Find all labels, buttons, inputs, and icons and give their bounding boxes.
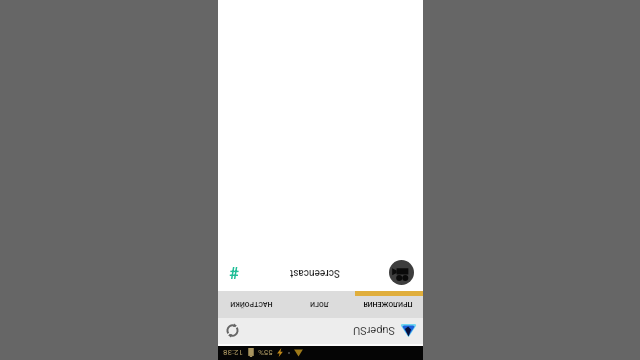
- staticText: #: [229, 263, 239, 282]
- button[interactable]: Refresh: [220, 318, 246, 344]
- button[interactable]: НАСТРОЙКИ: [218, 296, 286, 318]
- staticText: НАСТРОЙКИ: [230, 300, 273, 308]
- staticText: ЛОГИ: [310, 300, 329, 308]
- button[interactable]: Screencast: [218, 255, 423, 291]
- button[interactable]: ЛОГИ: [286, 296, 354, 318]
- staticText: 12:38: [223, 348, 243, 357]
- staticText: ПРИЛОЖЕНИЯ: [363, 300, 413, 308]
- staticText: SuperSU: [353, 324, 395, 337]
- staticText: Screencast: [289, 267, 340, 279]
- staticText: 55%: [258, 348, 273, 357]
- button[interactable]: ПРИЛОЖЕНИЯ: [354, 296, 423, 318]
